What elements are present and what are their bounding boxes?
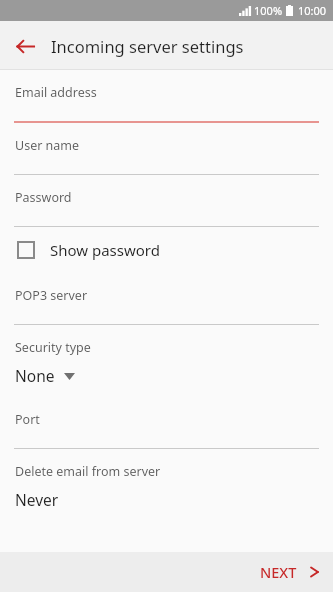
staticText: Delete email from server bbox=[15, 463, 161, 480]
button[interactable]: NEXT bbox=[242, 552, 333, 592]
staticText: 10:00 bbox=[298, 3, 327, 18]
staticText: None bbox=[15, 365, 55, 386]
button[interactable]: POP3 server bbox=[0, 273, 333, 325]
staticText: Port bbox=[15, 411, 40, 428]
staticText: 100% bbox=[254, 3, 283, 18]
button[interactable]: Navigate up bbox=[8, 29, 42, 63]
button[interactable]: User name bbox=[0, 123, 333, 175]
staticText: Show password bbox=[50, 240, 160, 260]
button[interactable]: Email address bbox=[0, 70, 333, 123]
staticText: Security type bbox=[15, 339, 91, 356]
staticText: Incoming server settings bbox=[51, 35, 244, 57]
staticText: Password bbox=[15, 189, 72, 206]
staticText: Email address bbox=[15, 84, 97, 101]
staticText: NEXT bbox=[260, 562, 297, 582]
button[interactable]: Password bbox=[0, 175, 333, 227]
staticText: POP3 server bbox=[15, 287, 88, 304]
button[interactable]: Security type bbox=[0, 325, 333, 397]
button[interactable]: Show password bbox=[0, 227, 333, 273]
button[interactable]: Port bbox=[0, 397, 333, 449]
button[interactable]: Delete email from server bbox=[0, 449, 333, 530]
staticText: User name bbox=[15, 137, 80, 154]
staticText: Never bbox=[15, 489, 59, 510]
